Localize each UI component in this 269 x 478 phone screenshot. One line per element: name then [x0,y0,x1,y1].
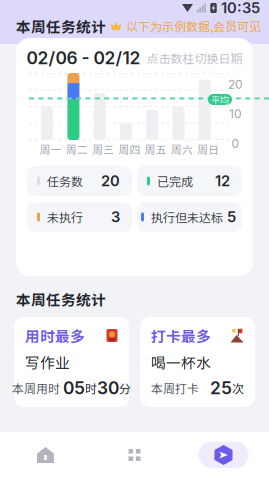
staticText: 时 [85,379,97,397]
staticText: 点击数柱切换日期 [146,49,242,67]
staticText: 喝一杯水 [151,351,211,373]
staticText: 以下为示例数据,会员可见 [126,17,261,35]
staticText: 10 [229,107,242,121]
staticText: 任务数 [47,172,83,190]
staticText: 12 [215,172,230,190]
staticText: 已完成 [157,172,193,190]
staticText: 周四 [118,141,140,157]
button[interactable]: 分类 [90,432,179,478]
staticText: 30 [97,377,119,398]
button[interactable]: 首页 [1,432,90,478]
button[interactable]: 已完成 [137,166,242,196]
staticText: 分 [119,379,131,397]
staticText: 本周打卡 [151,379,199,397]
staticText: 周一 [40,141,62,157]
staticText: 写作业 [25,351,70,373]
button[interactable]: 用时最多 [14,317,129,407]
staticText: 执行但未达标 [151,208,223,226]
staticText: 05 [63,377,85,398]
button[interactable]: 创建 [179,432,268,478]
staticText: 02/06 - 02/12 [26,47,140,68]
staticText: 未执行 [47,208,83,226]
staticText: 周日 [197,141,219,157]
staticText: 20 [101,172,120,190]
staticText: 打卡最多 [151,325,211,346]
staticText: 0 [231,136,239,151]
staticText: 周三 [92,141,114,157]
staticText: 10:35 [221,0,260,17]
button[interactable]: 任务数 [27,166,132,196]
button[interactable]: 执行但未达标 [137,202,242,232]
staticText: 20 [228,77,243,91]
staticText: 本周任务统计 [16,15,106,37]
staticText: 25 [210,377,232,398]
staticText: 5 [227,208,236,226]
staticText: 周二 [66,141,88,157]
staticText: 周五 [145,141,167,157]
staticText: 本周用时 [12,379,60,397]
staticText: 用时最多 [25,325,85,346]
staticText: 平均 [211,93,229,106]
staticText: 次 [232,379,244,397]
staticText: 3 [111,208,120,226]
staticText: 本周任务统计 [16,288,106,310]
button[interactable]: 未执行 [27,202,132,232]
staticText: 周六 [171,141,193,157]
button[interactable]: 打卡最多 [140,317,255,407]
